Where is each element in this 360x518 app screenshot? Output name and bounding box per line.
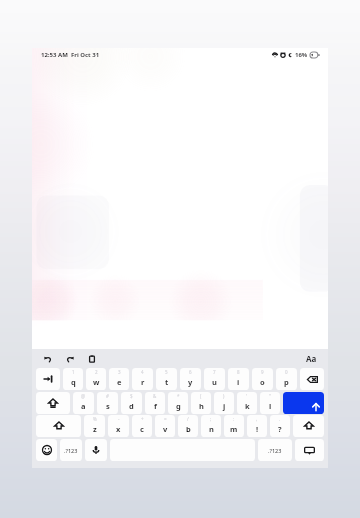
button[interactable]: 3 xyxy=(109,368,129,390)
staticText: 2 xyxy=(95,369,98,375)
button[interactable]: . xyxy=(270,415,290,437)
staticText: h xyxy=(199,401,204,411)
button[interactable]: 9 xyxy=(252,368,273,390)
button[interactable]: 6 xyxy=(180,368,201,390)
staticText: : xyxy=(233,416,235,422)
button[interactable]: / xyxy=(178,415,198,437)
button[interactable]: Shift xyxy=(36,415,81,437)
button[interactable]: .?123 xyxy=(258,439,292,461)
staticText: 12:53 AM Fri Oct 31 xyxy=(41,51,100,59)
staticText: . xyxy=(279,416,281,422)
staticText: ' xyxy=(246,393,248,399)
staticText: @ xyxy=(81,393,86,399)
button[interactable]: , xyxy=(247,415,267,437)
button[interactable]: * xyxy=(168,392,188,414)
button[interactable]: ( xyxy=(191,392,211,414)
button[interactable]: 0 xyxy=(276,368,297,390)
button[interactable]: Backspace xyxy=(300,368,324,390)
staticText: d xyxy=(129,401,134,411)
staticText: x xyxy=(116,424,121,434)
button[interactable]: + xyxy=(132,415,152,437)
staticText: .?123 xyxy=(64,447,78,454)
button[interactable]: % xyxy=(84,415,105,437)
staticText: ! xyxy=(256,424,259,434)
staticText: 4 xyxy=(141,369,144,375)
button[interactable]: 5 xyxy=(156,368,177,390)
staticText: - xyxy=(118,416,120,422)
staticText: / xyxy=(187,416,189,422)
staticText: y xyxy=(188,377,193,387)
button[interactable]: Aa xyxy=(303,351,320,366)
staticText: m xyxy=(230,424,238,434)
staticText: p xyxy=(284,377,289,387)
button[interactable]: = xyxy=(155,415,175,437)
button[interactable]: Undo xyxy=(41,352,55,366)
button[interactable]: 2 xyxy=(86,368,106,390)
staticText: 7 xyxy=(213,369,216,375)
staticText: i xyxy=(237,377,240,387)
button[interactable]: .?123 xyxy=(60,439,82,461)
staticText: $ xyxy=(130,393,133,399)
staticText: t xyxy=(165,377,169,387)
button[interactable]: 1 xyxy=(63,368,83,390)
button[interactable]: Caps lock xyxy=(36,392,70,414)
staticText: 6 xyxy=(189,369,192,375)
staticText: o xyxy=(260,377,265,387)
staticText: v xyxy=(163,424,168,434)
staticText: 3 xyxy=(118,369,121,375)
button[interactable]: # xyxy=(97,392,118,414)
button[interactable]: Shift xyxy=(293,415,324,437)
button[interactable]: - xyxy=(108,415,129,437)
button[interactable]: Send xyxy=(283,392,324,414)
staticText: Aa xyxy=(306,353,317,364)
staticText: ; xyxy=(210,416,212,422)
button[interactable]: Redo xyxy=(63,352,77,366)
staticText: # xyxy=(106,393,109,399)
button[interactable]: Tab xyxy=(36,368,60,390)
staticText: & xyxy=(153,393,157,399)
staticText: 5 xyxy=(165,369,168,375)
staticText: j xyxy=(223,401,226,411)
staticText: * xyxy=(177,393,180,399)
staticText: ) xyxy=(223,393,225,399)
staticText: + xyxy=(141,416,144,422)
button[interactable]: : xyxy=(224,415,244,437)
button[interactable]: 7 xyxy=(204,368,225,390)
staticText: 0 xyxy=(285,369,288,375)
button[interactable]: 4 xyxy=(132,368,153,390)
staticText: 8 xyxy=(237,369,240,375)
staticText: % xyxy=(93,416,97,422)
staticText: ( xyxy=(200,393,202,399)
staticText: 1 xyxy=(72,369,75,375)
button[interactable]: Hide keyboard xyxy=(295,439,324,461)
staticText: u xyxy=(212,377,217,387)
staticText: f xyxy=(154,401,157,411)
staticText: c xyxy=(140,424,144,434)
button[interactable]: ) xyxy=(214,392,234,414)
staticText: 9 xyxy=(261,369,264,375)
button[interactable]: Paste xyxy=(85,352,99,366)
staticText: r xyxy=(141,377,145,387)
button[interactable]: ' xyxy=(237,392,257,414)
staticText: a xyxy=(81,401,86,411)
staticText: 16% xyxy=(295,51,308,59)
button[interactable]: ; xyxy=(201,415,221,437)
button[interactable]: 8 xyxy=(228,368,249,390)
staticText: q xyxy=(71,377,76,387)
staticText: w xyxy=(93,377,100,387)
button[interactable]: " xyxy=(260,392,280,414)
staticText: ? xyxy=(278,424,282,434)
button[interactable]: Voice input xyxy=(85,439,107,461)
staticText: .?123 xyxy=(268,447,282,454)
staticText: e xyxy=(117,377,122,387)
button[interactable]: @ xyxy=(73,392,94,414)
button[interactable]: Emoji xyxy=(36,439,57,461)
staticText: s xyxy=(106,401,110,411)
staticText: = xyxy=(164,416,167,422)
staticText: n xyxy=(209,424,214,434)
staticText: l xyxy=(269,401,272,411)
staticText: z xyxy=(93,424,97,434)
button[interactable]: $ xyxy=(121,392,142,414)
button[interactable]: & xyxy=(145,392,165,414)
